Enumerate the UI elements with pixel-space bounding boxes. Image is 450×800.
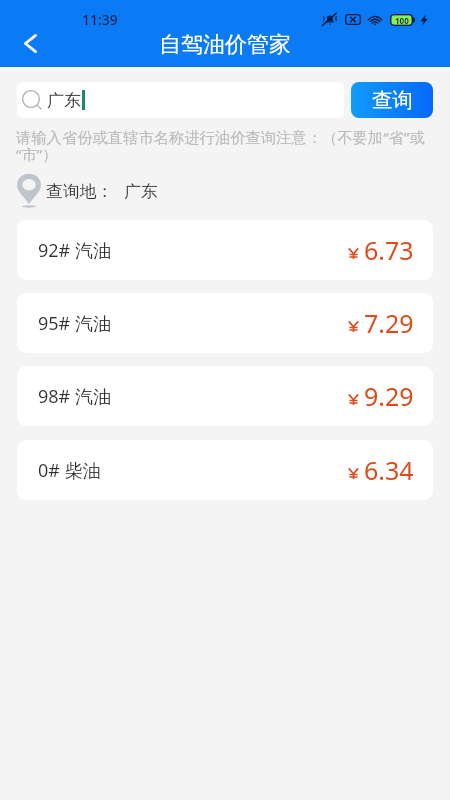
staticText: 100 xyxy=(395,15,409,26)
staticText: 广东 xyxy=(124,181,158,202)
staticText: 请输入省份或直辖市名称进行油价查询注意：（不要加“省”或 “市”） xyxy=(16,127,446,164)
staticText: 查询地： xyxy=(46,181,114,202)
staticText: 95# 汽油 xyxy=(38,311,111,336)
button[interactable]: 广东 xyxy=(17,82,344,118)
button[interactable]: Back xyxy=(8,21,52,65)
button[interactable]: 查询 xyxy=(351,82,433,118)
staticText: 自驾油价管家 xyxy=(159,31,291,59)
staticText: 6.73 xyxy=(364,233,414,267)
staticText: 11:39 xyxy=(82,10,118,29)
staticText: 0# 柴油 xyxy=(38,458,101,483)
button[interactable]: 95# 汽油 xyxy=(17,293,433,353)
button[interactable]: 92# 汽油 xyxy=(17,220,433,280)
staticText: 7.29 xyxy=(364,306,414,340)
button[interactable]: 98# 汽油 xyxy=(17,366,433,426)
staticText: 9.29 xyxy=(364,379,414,413)
staticText: 广东 xyxy=(47,90,81,111)
button[interactable]: 0# 柴油 xyxy=(17,440,433,500)
staticText: 查询 xyxy=(372,87,413,113)
staticText: 6.34 xyxy=(364,453,414,487)
staticText: 92# 汽油 xyxy=(38,238,111,263)
staticText: 98# 汽油 xyxy=(38,384,111,409)
